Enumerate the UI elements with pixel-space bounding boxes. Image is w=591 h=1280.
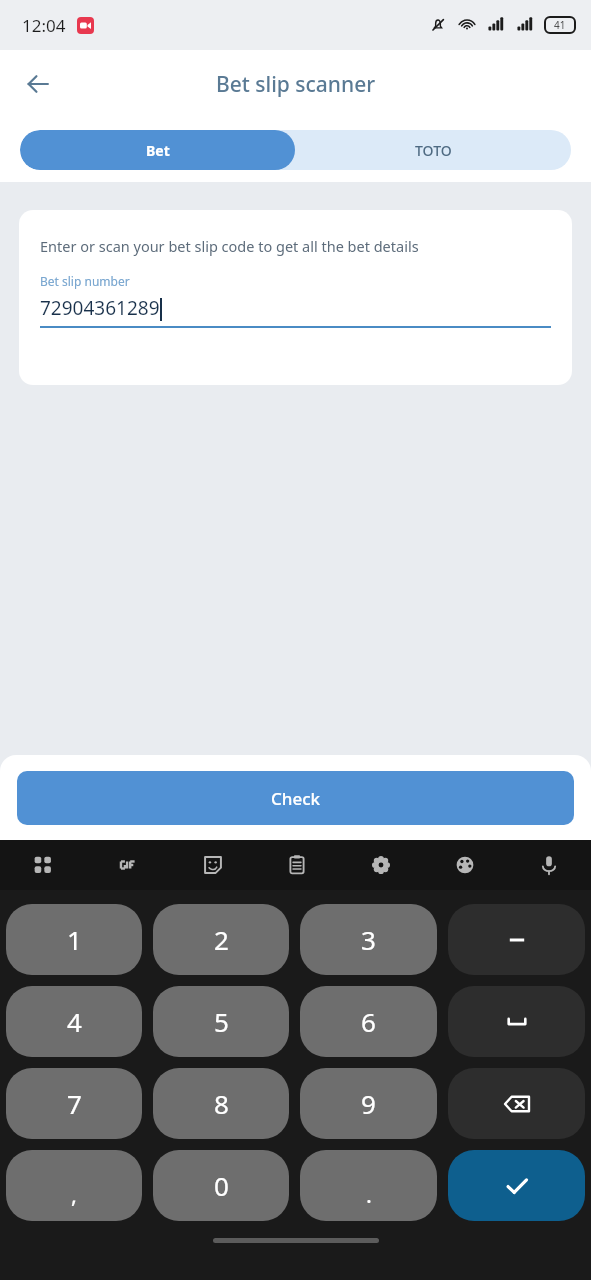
button[interactable]: Bet — [20, 130, 295, 170]
button[interactable]: Clipboard — [255, 840, 339, 890]
staticText: 41 — [554, 18, 566, 32]
button[interactable]: GIF — [85, 840, 170, 890]
button[interactable]: 4 — [6, 986, 142, 1057]
staticText: Check — [271, 787, 321, 810]
button[interactable]: Settings — [339, 840, 423, 890]
staticText: 0 — [214, 1168, 229, 1203]
staticText: 4 — [67, 1004, 82, 1039]
staticText: . — [366, 1179, 372, 1209]
button[interactable]: Check — [17, 771, 574, 825]
staticText: 5 — [214, 1004, 229, 1039]
staticText: 1 — [67, 922, 82, 957]
staticText: 2 — [214, 922, 229, 957]
staticText: 6 — [361, 1004, 376, 1039]
button[interactable]: Dash — [448, 904, 585, 975]
button[interactable]: Voice input — [507, 840, 591, 890]
button[interactable]: 1 — [6, 904, 142, 975]
button[interactable]: 5 — [153, 986, 289, 1057]
staticText: Bet — [146, 141, 170, 160]
staticText: 12:04 — [22, 14, 66, 37]
staticText: TOTO — [415, 141, 452, 160]
button[interactable]: , — [6, 1150, 142, 1221]
button[interactable]: Backspace — [448, 1068, 585, 1139]
button[interactable]: 7 — [6, 1068, 142, 1139]
staticText: 7 — [67, 1086, 82, 1121]
staticText: Bet slip scanner — [216, 70, 376, 99]
button[interactable]: . — [300, 1150, 437, 1221]
staticText: 9 — [361, 1086, 376, 1121]
button[interactable]: Apps — [0, 840, 85, 890]
staticText: 3 — [361, 922, 376, 957]
staticText: , — [71, 1179, 77, 1209]
button[interactable]: 0 — [153, 1150, 289, 1221]
button[interactable]: Space — [448, 986, 585, 1057]
button[interactable]: 6 — [300, 986, 437, 1057]
button[interactable]: Back — [14, 60, 62, 108]
button[interactable]: Themes — [423, 840, 507, 890]
button[interactable]: 3 — [300, 904, 437, 975]
staticText: Bet slip number — [40, 273, 130, 289]
button[interactable]: TOTO — [295, 130, 571, 170]
staticText: Enter or scan your bet slip code to get … — [40, 236, 419, 256]
button[interactable]: 2 — [153, 904, 289, 975]
staticText: 8 — [214, 1086, 229, 1121]
staticText: 72904361289 — [40, 295, 160, 321]
button[interactable]: Enter — [448, 1150, 585, 1221]
button[interactable]: Stickers — [170, 840, 255, 890]
button[interactable]: 9 — [300, 1068, 437, 1139]
button[interactable]: 8 — [153, 1068, 289, 1139]
